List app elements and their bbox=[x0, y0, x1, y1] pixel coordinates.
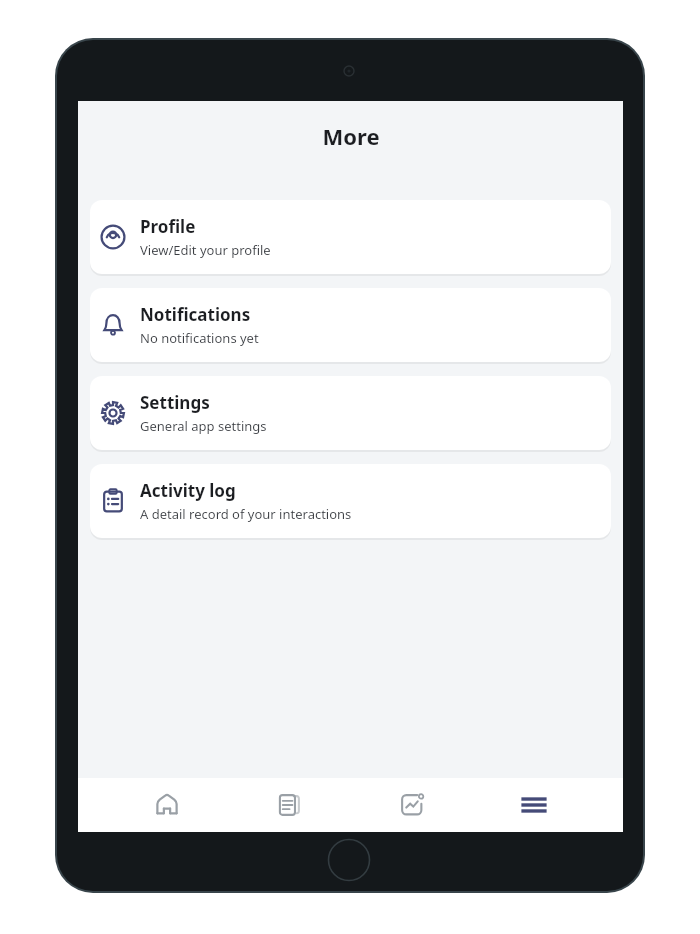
button[interactable]: Activity log bbox=[90, 464, 611, 538]
staticText: Notifications bbox=[140, 303, 251, 326]
staticText: Activity log bbox=[140, 479, 236, 502]
button[interactable]: Analytics bbox=[378, 778, 446, 832]
button[interactable]: Notifications bbox=[90, 288, 611, 362]
button[interactable]: Documents bbox=[255, 778, 323, 832]
button[interactable]: Home bbox=[133, 778, 201, 832]
staticText: Settings bbox=[140, 391, 210, 414]
staticText: More bbox=[322, 121, 380, 151]
button[interactable]: More menu bbox=[500, 778, 568, 832]
button[interactable]: Profile bbox=[90, 200, 611, 274]
button[interactable]: Settings bbox=[90, 376, 611, 450]
staticText: View/Edit your profile bbox=[140, 241, 271, 259]
staticText: A detail record of your interactions bbox=[140, 505, 352, 523]
staticText: No notifications yet bbox=[140, 329, 259, 347]
staticText: General app settings bbox=[140, 417, 267, 435]
staticText: Profile bbox=[140, 215, 196, 238]
